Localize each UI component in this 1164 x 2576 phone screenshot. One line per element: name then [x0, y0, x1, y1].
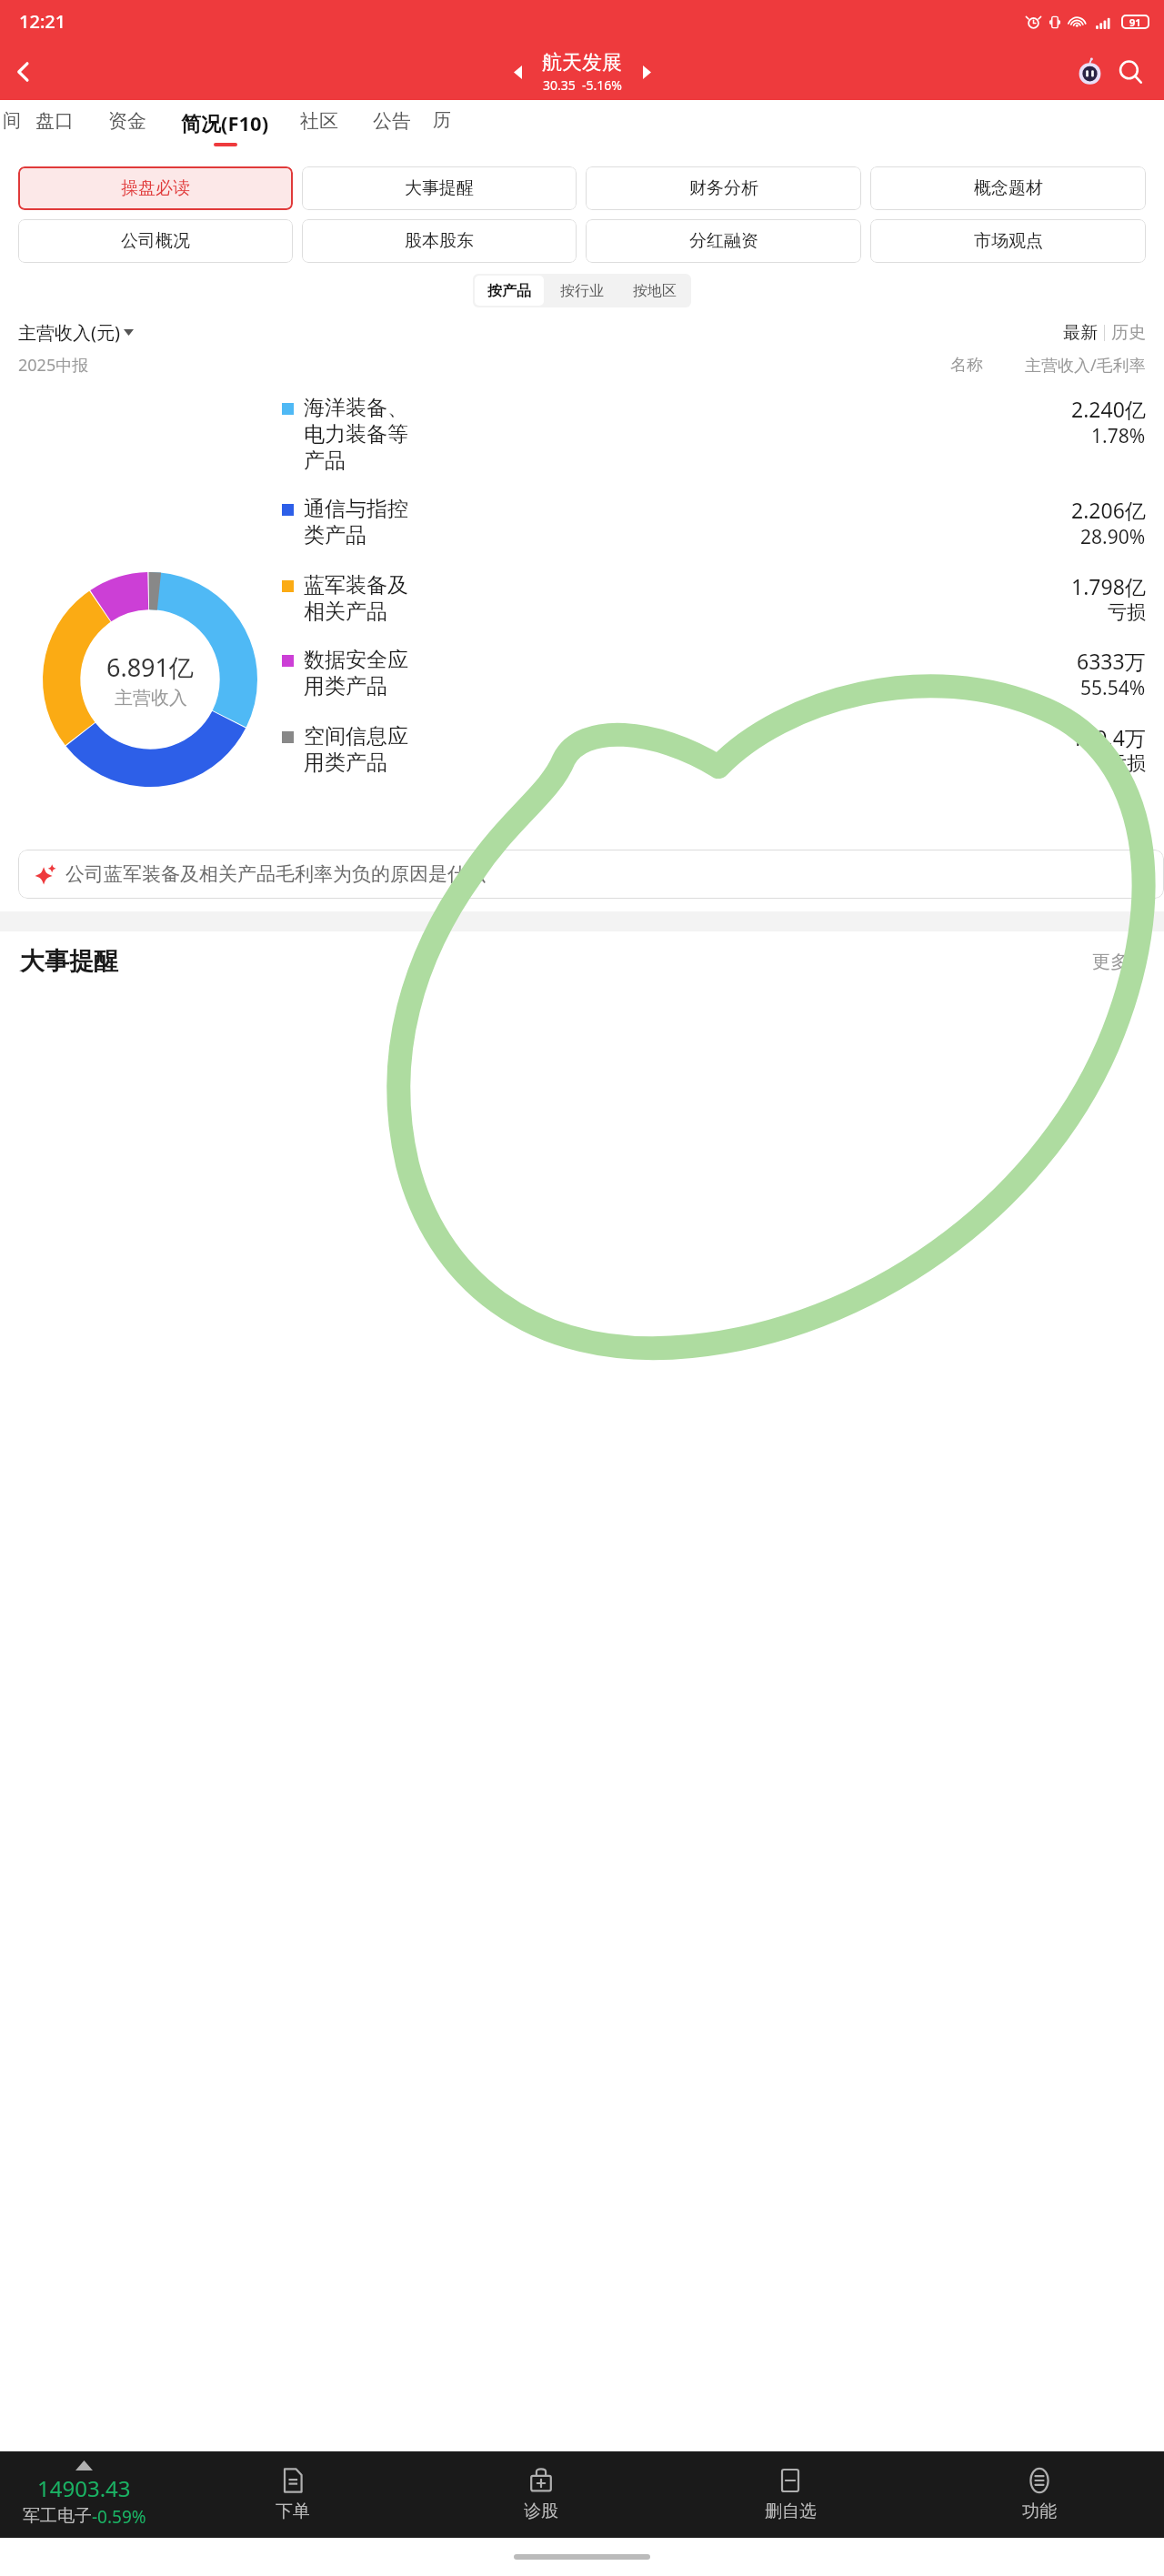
button[interactable]: 操盘必读 — [18, 166, 293, 210]
staticText: 28.90% — [1080, 524, 1146, 550]
staticText: 操盘必读 — [121, 177, 190, 199]
staticText: 名称 — [950, 355, 983, 376]
button[interactable]: 公告 — [373, 109, 411, 139]
staticText: 按行业 — [560, 282, 604, 300]
button[interactable]: 功能 — [915, 2451, 1164, 2538]
button[interactable]: 蓝军装备及 — [282, 572, 1146, 625]
staticText: 12:21 — [19, 9, 66, 34]
staticText: 盘口 — [35, 109, 74, 133]
button[interactable]: 最新 — [1063, 322, 1098, 344]
staticText: 55.54% — [1080, 675, 1146, 701]
button[interactable]: 社区 — [300, 109, 338, 139]
staticText: 大事提醒 — [20, 946, 118, 977]
staticText: 亏损 — [1108, 600, 1146, 624]
staticText: 公司概况 — [121, 230, 190, 252]
staticText: 概念题材 — [974, 177, 1043, 199]
button[interactable]: 通信与指控 — [282, 496, 1146, 550]
staticText: 社区 — [300, 109, 338, 133]
button[interactable]: 分红融资 — [586, 219, 861, 263]
staticText: 30.35 -5.16% — [543, 76, 622, 94]
button[interactable]: AI assistant — [1069, 52, 1109, 92]
staticText: 6333万 — [1077, 647, 1146, 675]
button[interactable]: 大事提醒 — [302, 166, 577, 210]
button[interactable]: 主营收入(元) — [18, 320, 134, 345]
staticText: 类产品 — [304, 522, 366, 548]
staticText: 财务分析 — [689, 177, 758, 199]
button[interactable]: 市场观点 — [870, 219, 1146, 263]
staticText: 主营收入/毛利率 — [1025, 354, 1146, 377]
button[interactable]: 按地区 — [620, 276, 689, 306]
staticText: 用类产品 — [304, 673, 387, 699]
button[interactable]: 空间信息应 — [282, 723, 1146, 776]
button[interactable]: 简况(F10) — [181, 109, 269, 146]
staticText: 主营收入(元) — [18, 320, 120, 345]
staticText: 按地区 — [633, 282, 677, 300]
staticText: 功能 — [1022, 2501, 1057, 2522]
staticText: 1.78% — [1091, 423, 1146, 449]
button[interactable]: Previous stock — [502, 56, 533, 87]
staticText: 91 — [1129, 15, 1141, 29]
button[interactable]: 诊股 — [416, 2451, 666, 2538]
button[interactable]: 历史 — [1111, 322, 1146, 344]
staticText: 更多 — [1092, 951, 1129, 973]
staticText: 14903.43 — [37, 2473, 131, 2503]
staticText: 相关产品 — [304, 599, 387, 625]
button[interactable]: 按产品 — [475, 276, 544, 306]
staticText: 用类产品 — [304, 750, 387, 776]
staticText: 2025中报 — [18, 354, 89, 377]
staticText: 蓝军装备及 — [304, 572, 408, 599]
staticText: 2.240亿 — [1071, 395, 1146, 423]
button[interactable]: 删自选 — [666, 2451, 915, 2538]
button[interactable]: Next stock — [631, 56, 662, 87]
staticText: 2.206亿 — [1071, 496, 1146, 524]
staticText: 1.798亿 — [1071, 572, 1146, 600]
button[interactable]: 历 — [433, 109, 446, 132]
staticText: 亏损 — [1108, 751, 1146, 775]
staticText: 按产品 — [487, 282, 531, 300]
button[interactable]: 公司概况 — [18, 219, 293, 263]
staticText: 删自选 — [765, 2501, 817, 2522]
button[interactable]: 间 — [3, 109, 15, 132]
staticText: 简况(F10) — [181, 109, 269, 136]
staticText: 诊股 — [524, 2501, 558, 2522]
button[interactable]: 14903.43 — [0, 2451, 168, 2538]
staticText: 下单 — [276, 2501, 310, 2522]
button[interactable]: 下单 — [168, 2451, 416, 2538]
staticText: 139.4万 — [1071, 723, 1146, 751]
button[interactable]: 资金 — [108, 109, 146, 139]
button[interactable]: 按行业 — [547, 276, 617, 306]
button[interactable]: 概念题材 — [870, 166, 1146, 210]
staticText: 公告 — [373, 109, 411, 133]
button[interactable]: 大事提醒 — [20, 946, 1144, 977]
staticText: 大事提醒 — [405, 177, 474, 199]
button[interactable]: 盘口 — [35, 109, 74, 139]
staticText: 产品 — [304, 448, 346, 474]
staticText: 主营收入 — [115, 687, 187, 709]
staticText: -0.59% — [92, 2505, 146, 2529]
staticText: 空间信息应 — [304, 723, 408, 750]
button[interactable]: 航天发展 — [542, 50, 622, 94]
staticText: 通信与指控 — [304, 496, 408, 522]
button[interactable]: 公司蓝军装备及相关产品毛利率为负的原因是什么 — [18, 850, 1164, 899]
staticText: 资金 — [108, 109, 146, 133]
button[interactable]: Search — [1109, 51, 1151, 93]
button[interactable]: 股本股东 — [302, 219, 577, 263]
staticText: 公司蓝军装备及相关产品毛利率为负的原因是什么 — [65, 862, 486, 886]
staticText: 股本股东 — [405, 230, 474, 252]
button[interactable]: 海洋装备、 — [282, 395, 1146, 474]
staticText: 军工电子 — [23, 2505, 92, 2527]
button[interactable]: 数据安全应 — [282, 647, 1146, 701]
staticText: 数据安全应 — [304, 647, 408, 673]
staticText: 市场观点 — [974, 230, 1043, 252]
staticText: 6.891亿 — [106, 650, 195, 684]
button[interactable]: Back — [0, 48, 47, 96]
staticText: 分红融资 — [689, 230, 758, 252]
button[interactable]: 财务分析 — [586, 166, 861, 210]
staticText: 海洋装备、 — [304, 395, 408, 421]
staticText: 航天发展 — [542, 50, 622, 75]
staticText: 电力装备等 — [304, 421, 408, 448]
